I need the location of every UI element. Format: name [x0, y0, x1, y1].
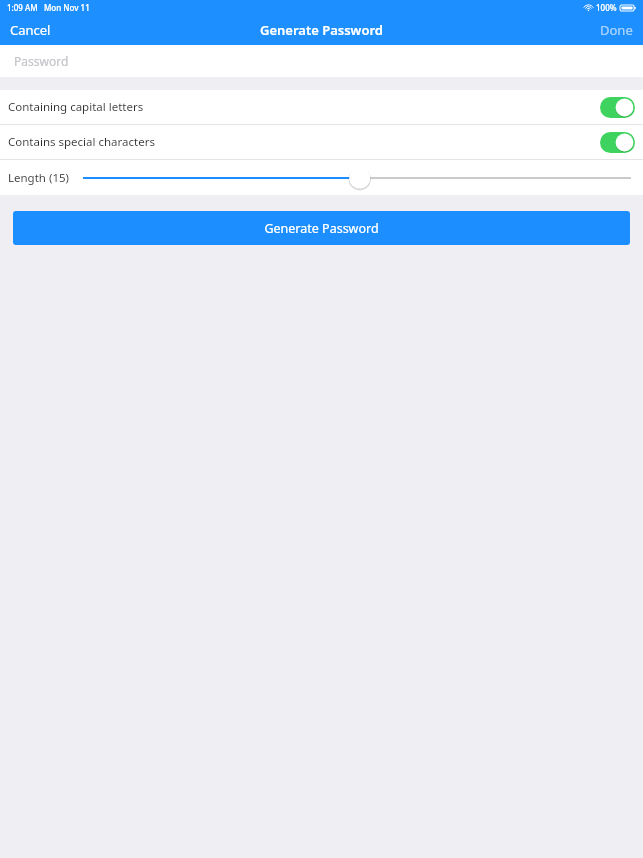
staticText: 100%	[596, 2, 617, 13]
staticText: Contains special characters	[8, 134, 155, 150]
staticText: Cancel	[10, 21, 51, 39]
button[interactable]: Generate Password	[13, 211, 630, 245]
button[interactable]: Done	[590, 14, 643, 45]
staticText: Length (15)	[8, 170, 69, 186]
staticText: Password	[14, 53, 69, 69]
button[interactable]: Contains special characters	[0, 125, 643, 159]
button[interactable]: Password length slider	[83, 160, 631, 195]
staticText: Done	[600, 21, 633, 39]
button[interactable]: Containing capital letters	[0, 90, 643, 124]
staticText: Generate Password	[260, 21, 383, 39]
staticText: Containing capital letters	[8, 99, 144, 115]
staticText: Generate Password	[264, 220, 379, 237]
button[interactable]: Cancel	[0, 14, 61, 45]
staticText: 1:09 AM	[7, 2, 38, 13]
button[interactable]: Password	[0, 45, 643, 77]
staticText: Mon Nov 11	[44, 2, 90, 13]
